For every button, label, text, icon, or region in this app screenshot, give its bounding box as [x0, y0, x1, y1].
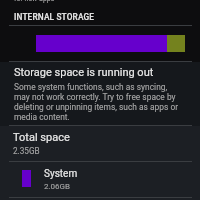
button[interactable]: System: [0, 162, 200, 198]
staticText: Total space: [13, 131, 70, 144]
button[interactable]: Storage usage bar: [36, 35, 185, 52]
staticText: 2.35GB: [13, 146, 40, 156]
staticText: Storage space is running out: [14, 66, 154, 79]
button[interactable]: Total space: [0, 126, 200, 162]
button[interactable]: Storage space is running out: [0, 62, 200, 125]
staticText: for new apps: [14, 0, 55, 3]
staticText: 2.06GB: [44, 182, 71, 191]
staticText: INTERNAL STORAGE: [14, 12, 95, 22]
staticText: System: [44, 168, 78, 180]
staticText: Some system functions, such as syncing, …: [14, 82, 179, 122]
